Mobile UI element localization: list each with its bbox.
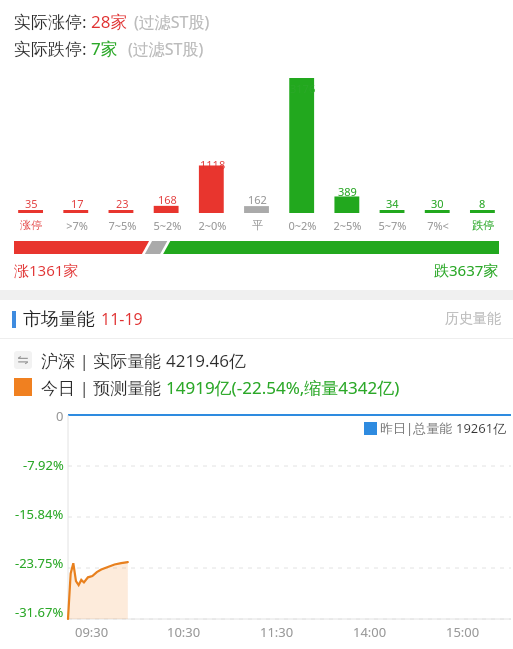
staticText: 0	[56, 407, 64, 423]
staticText: 实际涨停:	[14, 10, 91, 33]
staticText: 7家	[91, 37, 118, 60]
button[interactable]: 历史量能	[445, 310, 501, 328]
staticText: 10:30	[167, 623, 201, 641]
staticText: -23.75%	[15, 554, 64, 570]
staticText: (过滤ST股)	[134, 11, 210, 33]
staticText: 14:00	[353, 623, 387, 641]
staticText: 实际跌停:	[14, 37, 91, 60]
staticText: 15:00	[446, 623, 480, 641]
staticText: 7%<	[427, 218, 449, 233]
staticText: 跌3637家	[434, 260, 499, 280]
staticText: 今日 | 预测量能	[41, 376, 166, 399]
staticText: 11:30	[260, 623, 294, 641]
staticText: 35	[25, 196, 38, 211]
staticText: 5~2%	[153, 218, 182, 233]
button[interactable]	[14, 241, 499, 254]
staticText: 涨1361家	[14, 260, 79, 280]
staticText: 09:30	[75, 623, 109, 641]
staticText: 涨停	[20, 218, 42, 232]
staticText: 23	[116, 196, 129, 211]
staticText: 历史量能	[445, 310, 501, 328]
staticText: 7~5%	[108, 218, 137, 233]
staticText: 平	[252, 218, 263, 232]
staticText: 4219.46亿	[166, 349, 246, 372]
staticText: >7%	[66, 218, 88, 233]
staticText: 2~0%	[198, 218, 227, 233]
staticText: -7.92%	[23, 456, 64, 472]
staticText: 5~7%	[378, 218, 407, 233]
staticText: 3176	[290, 81, 316, 96]
staticText: 市场量能	[23, 308, 95, 331]
staticText: 34	[386, 196, 399, 211]
staticText: 30	[431, 196, 444, 211]
staticText: 昨日|总量能	[380, 419, 456, 437]
staticText: 11-19	[101, 308, 143, 330]
staticText: 17	[71, 196, 84, 211]
staticText: (过滤ST股)	[128, 38, 204, 60]
staticText: 2~5%	[333, 218, 362, 233]
staticText: 1118	[200, 157, 226, 172]
staticText: 14919亿(-22.54%,缩量4342亿)	[166, 376, 400, 399]
staticText: 跌停	[472, 218, 494, 232]
staticText: 19261亿	[456, 419, 507, 437]
staticText: 168	[158, 192, 177, 207]
staticText: 沪深 | 实际量能	[41, 349, 166, 372]
staticText: 28家	[91, 10, 128, 33]
staticText: -31.67%	[15, 603, 64, 619]
staticText: -15.84%	[15, 505, 64, 521]
staticText: 389	[338, 184, 357, 199]
staticText: 0~2%	[288, 218, 317, 233]
staticText: 162	[248, 192, 267, 207]
staticText: 8	[479, 196, 486, 211]
